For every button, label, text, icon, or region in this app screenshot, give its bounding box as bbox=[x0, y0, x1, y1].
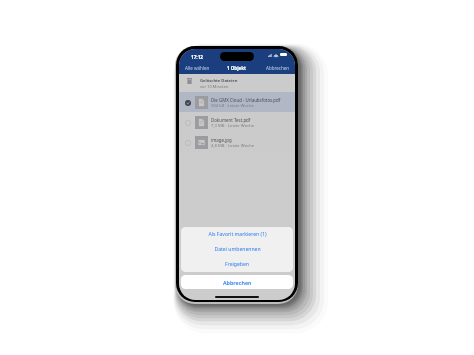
staticText: Gelöschte Dateien bbox=[200, 78, 238, 84]
button[interactable]: Datei umbenennen bbox=[181, 242, 293, 257]
button[interactable]: Freigeben bbox=[181, 257, 293, 272]
other: Auswählen bbox=[185, 140, 191, 146]
other: Ausgewählt bbox=[185, 100, 191, 106]
other: Papierkorb bbox=[187, 78, 192, 84]
staticText: 17:12 bbox=[191, 54, 204, 60]
other: Auswählen bbox=[185, 120, 191, 126]
staticText: vor 10 Minuten bbox=[200, 84, 229, 89]
button[interactable]: Ausgewählt bbox=[179, 92, 295, 112]
button[interactable]: Abbrechen bbox=[181, 275, 293, 289]
staticText: Abbrechen bbox=[223, 279, 252, 286]
button[interactable]: Auswählen bbox=[179, 112, 295, 132]
staticText: 1 Objekt bbox=[227, 65, 246, 71]
staticText: 7,3 MB · Letzte Woche bbox=[211, 123, 255, 129]
button[interactable]: Als Favorit markieren (1) bbox=[181, 227, 293, 242]
staticText: Alle wählen bbox=[185, 65, 210, 71]
button[interactable]: Papierkorb bbox=[179, 74, 295, 92]
staticText: Abbrechen bbox=[266, 65, 289, 71]
staticText: Die GMX Cloud - Urlaubsfotos.pdf bbox=[211, 97, 281, 103]
staticText: Dokument Test.pdf bbox=[211, 117, 251, 123]
button[interactable]: Auswählen bbox=[179, 132, 295, 152]
button[interactable]: Alle wählen bbox=[179, 65, 227, 71]
staticText: Als Favorit markieren (1) bbox=[208, 231, 267, 238]
staticText: 304 kB · Letzte Woche bbox=[211, 103, 254, 109]
staticText: 4,8 MB · Letzte Woche bbox=[211, 143, 255, 149]
staticText: image.jpg bbox=[211, 137, 232, 143]
button[interactable]: Abbrechen bbox=[246, 65, 295, 71]
staticText: Freigeben bbox=[225, 261, 249, 268]
staticText: Datei umbenennen bbox=[214, 246, 261, 253]
